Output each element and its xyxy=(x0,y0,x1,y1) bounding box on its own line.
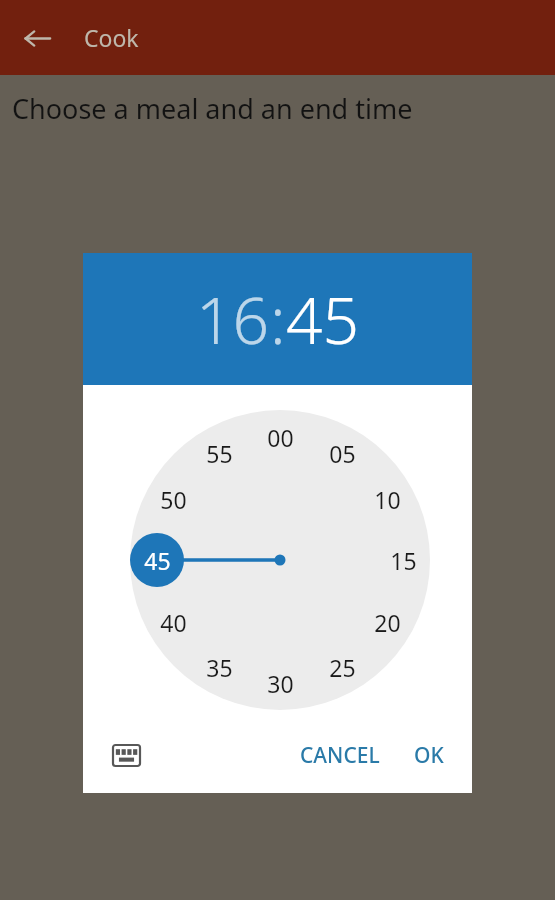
staticText: : xyxy=(270,276,286,363)
button[interactable]: 45 xyxy=(286,276,360,363)
staticText: 30 xyxy=(267,668,294,699)
button[interactable]: 16 xyxy=(196,276,270,363)
button[interactable]: 30 xyxy=(255,667,305,699)
button[interactable]: 25 xyxy=(317,651,367,683)
button[interactable]: CANCEL xyxy=(288,729,392,782)
staticText: 50 xyxy=(160,484,187,515)
staticText: 40 xyxy=(160,607,187,638)
button[interactable]: Back xyxy=(12,13,62,63)
button[interactable]: 55 xyxy=(194,437,244,469)
staticText: OK xyxy=(414,741,444,770)
staticText: Choose a meal and an end time xyxy=(12,90,413,127)
staticText: 20 xyxy=(374,607,401,638)
staticText: 55 xyxy=(206,438,233,469)
staticText: 25 xyxy=(329,652,356,683)
staticText: 45 xyxy=(286,276,360,363)
staticText: 05 xyxy=(329,438,356,469)
button[interactable]: Switch to text input xyxy=(105,734,147,776)
staticText: 35 xyxy=(206,652,233,683)
button[interactable]: 10 xyxy=(362,483,412,515)
staticText: 00 xyxy=(267,422,294,453)
staticText: 15 xyxy=(390,545,417,576)
staticText: CANCEL xyxy=(300,741,380,770)
staticText: 16 xyxy=(196,276,270,363)
button[interactable]: 35 xyxy=(194,651,244,683)
button[interactable]: OK xyxy=(406,729,452,782)
button[interactable]: 20 xyxy=(362,606,412,638)
staticText: Cook xyxy=(84,22,139,53)
staticText: 45 xyxy=(144,545,171,576)
button[interactable]: 00 xyxy=(255,421,305,453)
button[interactable]: 15 xyxy=(378,544,428,576)
button[interactable]: 05 xyxy=(317,437,367,469)
button[interactable]: 40 xyxy=(148,606,198,638)
staticText: 10 xyxy=(374,484,401,515)
button[interactable]: 50 xyxy=(148,483,198,515)
button[interactable]: 45 xyxy=(132,544,182,576)
